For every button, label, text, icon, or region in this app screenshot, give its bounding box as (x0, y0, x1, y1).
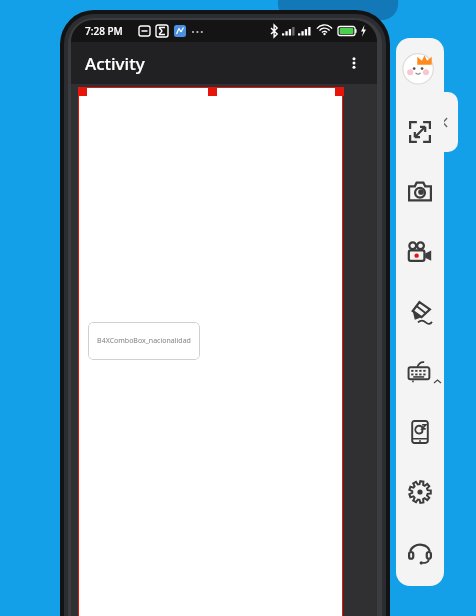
button[interactable]: B4XComboBox_nacionalidad (78, 87, 343, 616)
button[interactable]: Support (396, 526, 444, 578)
staticText: B4XComboBox_nacionalidad (97, 336, 191, 346)
button[interactable]: Sleep mode (396, 406, 444, 458)
staticText: Activity (85, 52, 145, 75)
button[interactable]: More options (337, 46, 371, 80)
button[interactable]: B4XComboBox_nacionalidad (88, 322, 200, 360)
button[interactable]: Fullscreen (396, 106, 444, 158)
button[interactable]: Keyboard (396, 346, 444, 398)
button[interactable]: Brush (396, 286, 444, 338)
button[interactable]: Assistant avatar (401, 48, 439, 86)
button[interactable]: Screenshot (396, 166, 444, 218)
button[interactable]: Collapse panel (432, 92, 458, 152)
button[interactable]: Record video (396, 226, 444, 278)
button[interactable]: Settings (396, 466, 444, 518)
staticText: 7:28 PM (85, 24, 123, 38)
